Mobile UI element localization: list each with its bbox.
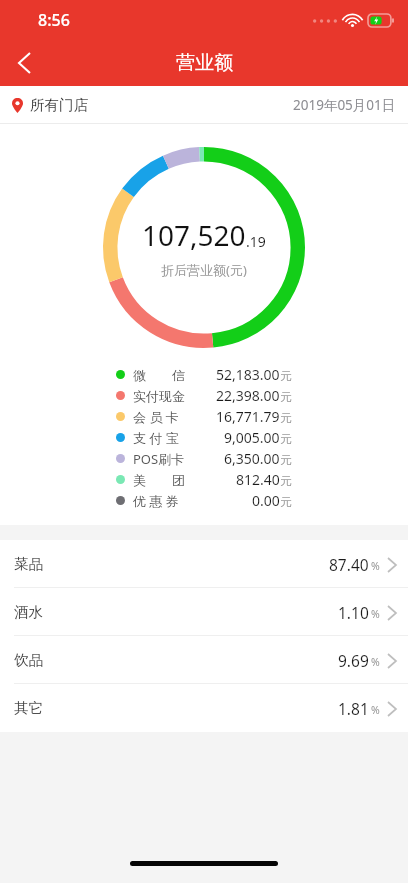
staticText: 支 付 宝 (133, 429, 195, 447)
staticText: 52,183.00 (216, 365, 280, 384)
staticText: 折后营业额(元) (161, 261, 247, 279)
staticText: 美 团 (133, 471, 195, 489)
staticText: 107,520 (142, 216, 246, 254)
staticText: 酒水 (14, 603, 43, 621)
staticText: 9.69 (338, 650, 369, 671)
staticText: % (371, 703, 380, 717)
staticText: 6,350.00 (224, 449, 280, 468)
staticText: 元 (280, 432, 292, 446)
button[interactable]: 酒水 (0, 588, 408, 636)
staticText: 元 (280, 390, 292, 404)
staticText: 所有门店 (30, 96, 88, 114)
staticText: 0.00 (252, 491, 280, 510)
staticText: % (371, 607, 380, 621)
staticText: 22,398.00 (216, 386, 280, 405)
button[interactable]: 所有门店 (0, 86, 408, 123)
button[interactable]: 其它 (0, 684, 408, 732)
staticText: 实付现金 (133, 388, 195, 404)
staticText: 元 (280, 453, 292, 467)
staticText: 菜品 (14, 555, 43, 573)
staticText: 16,771.79 (216, 407, 280, 426)
staticText: 饮品 (14, 651, 43, 669)
staticText: 9,005.00 (224, 428, 280, 447)
staticText: 1.10 (338, 602, 369, 623)
staticText: 87.40 (329, 554, 369, 575)
staticText: 营业额 (176, 51, 233, 75)
staticText: 812.40 (236, 470, 280, 489)
staticText: 元 (280, 495, 292, 509)
staticText: % (371, 559, 380, 573)
staticText: 1.81 (338, 698, 369, 719)
staticText: POS刷卡 (133, 450, 195, 468)
staticText: 会 员 卡 (133, 408, 195, 426)
staticText: 元 (280, 369, 292, 383)
button[interactable]: 饮品 (0, 636, 408, 684)
button[interactable]: Back (0, 40, 48, 86)
staticText: 优 惠 券 (133, 492, 195, 510)
staticText: 元 (280, 474, 292, 488)
staticText: .19 (246, 232, 266, 251)
staticText: 8:56 (38, 9, 70, 31)
staticText: 元 (280, 411, 292, 425)
staticText: 2019年05月01日 (293, 96, 396, 114)
staticText: % (371, 655, 380, 669)
staticText: 其它 (14, 699, 43, 717)
button[interactable]: 菜品 (0, 540, 408, 588)
staticText: 微 信 (133, 366, 195, 384)
